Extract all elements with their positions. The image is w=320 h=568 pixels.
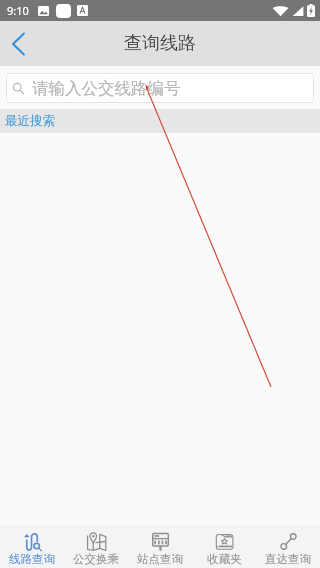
staticText: 站点查询 bbox=[137, 552, 183, 566]
button[interactable]: Back bbox=[0, 21, 36, 66]
button[interactable]: 请输入公交线路编号 bbox=[6, 73, 314, 103]
button[interactable]: 站点查询 bbox=[128, 525, 192, 568]
staticText: 收藏夹 bbox=[207, 552, 242, 566]
button[interactable]: 线路查询 bbox=[0, 525, 64, 568]
staticText: 直达查询 bbox=[265, 552, 311, 566]
staticText: 线路查询 bbox=[9, 552, 55, 566]
staticText: 公交换乘 bbox=[73, 552, 119, 566]
staticText: 最近搜索 bbox=[5, 113, 55, 129]
staticText: 查询线路 bbox=[124, 32, 196, 55]
button[interactable]: 收藏夹 bbox=[192, 525, 256, 568]
button[interactable]: 公交换乘 bbox=[64, 525, 128, 568]
staticText: 请输入公交线路编号 bbox=[32, 78, 181, 99]
button[interactable]: 直达查询 bbox=[256, 525, 320, 568]
staticText: 9:10 bbox=[7, 3, 29, 18]
